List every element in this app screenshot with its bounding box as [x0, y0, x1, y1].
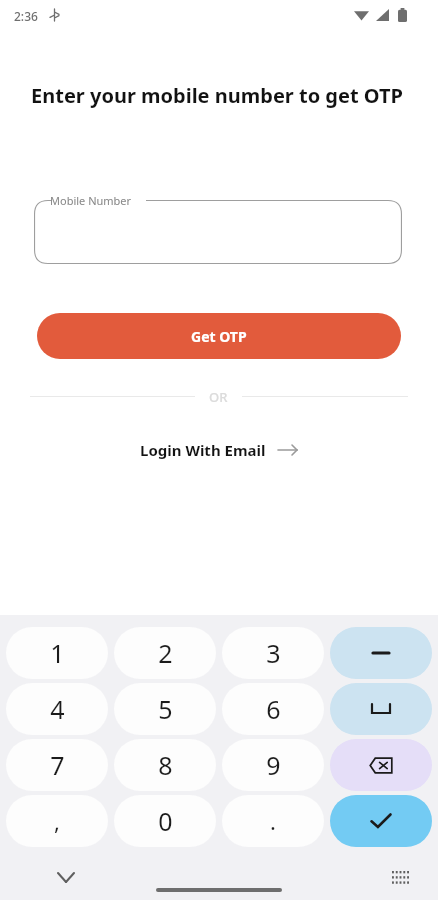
staticText: 5	[158, 692, 173, 726]
button[interactable]: 5	[114, 683, 216, 735]
button[interactable]: 4	[6, 683, 108, 735]
staticText: 6	[266, 692, 281, 726]
button[interactable]: Space	[330, 683, 432, 735]
button[interactable]: Done	[330, 795, 432, 847]
button[interactable]: 1	[6, 627, 108, 679]
button[interactable]: Login With Email	[132, 436, 306, 464]
button[interactable]: 3	[222, 627, 324, 679]
button[interactable]: 9	[222, 739, 324, 791]
staticText: Enter your mobile number to get OTP	[31, 82, 403, 109]
staticText: 1	[50, 636, 65, 670]
staticText: 7	[50, 748, 65, 782]
button[interactable]: .	[222, 795, 324, 847]
staticText: 9	[266, 748, 281, 782]
staticText: .	[270, 806, 276, 836]
button[interactable]: Hide keyboard	[46, 857, 86, 897]
button[interactable]: 0	[114, 795, 216, 847]
staticText: 8	[158, 748, 173, 782]
staticText: 4	[50, 692, 65, 726]
staticText: Login With Email	[140, 440, 266, 460]
staticText: ,	[54, 806, 60, 836]
staticText: OR	[209, 388, 228, 404]
button[interactable]: Mobile Number	[34, 200, 402, 264]
button[interactable]: 2	[114, 627, 216, 679]
button[interactable]: ,	[6, 795, 108, 847]
button[interactable]: Get OTP	[37, 313, 401, 359]
staticText: Get OTP	[191, 327, 247, 346]
button[interactable]: 8	[114, 739, 216, 791]
button[interactable]: Backspace	[330, 739, 432, 791]
staticText: 2	[158, 636, 173, 670]
staticText: 0	[158, 804, 173, 838]
button[interactable]: Switch keyboard	[380, 857, 420, 897]
staticText: Mobile Number	[50, 193, 132, 208]
button[interactable]: 7	[6, 739, 108, 791]
button[interactable]: 6	[222, 683, 324, 735]
staticText: 3	[266, 636, 281, 670]
button[interactable]: Dash	[330, 627, 432, 679]
staticText: 2:36	[14, 8, 38, 24]
